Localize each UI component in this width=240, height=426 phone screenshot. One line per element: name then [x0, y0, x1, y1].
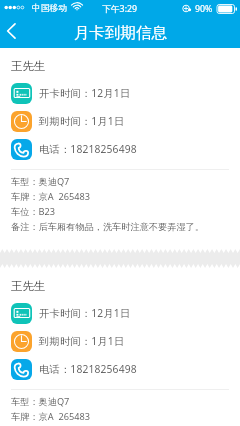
- staticText: 中国移动: [32, 3, 68, 14]
- staticText: 车牌：京A 265483: [11, 410, 240, 423]
- staticText: 电话：18218256498: [39, 362, 137, 376]
- staticText: 到期时间：1月1日: [39, 334, 125, 348]
- staticText: 到期时间：1月1日: [39, 114, 125, 128]
- staticText: 车牌：京A 265483: [11, 190, 240, 203]
- staticText: 90%: [195, 3, 213, 15]
- staticText: 车位：B23: [11, 205, 240, 218]
- staticText: 开卡时间：12月1日: [39, 86, 131, 100]
- staticText: 开卡时间：12月1日: [39, 306, 131, 320]
- staticText: 王先生: [11, 59, 46, 73]
- staticText: 下午3:29: [102, 3, 138, 15]
- staticText: 电话：18218256498: [39, 142, 137, 156]
- staticText: 车型：奥迪Q7: [11, 395, 240, 408]
- button[interactable]: Back: [0, 20, 26, 46]
- staticText: 备注：后车厢有物品，洗车时注意不要弄湿了。: [11, 221, 240, 233]
- staticText: 王先生: [11, 279, 46, 293]
- staticText: 月卡到期信息: [74, 23, 167, 43]
- staticText: 车型：奥迪Q7: [11, 175, 240, 188]
